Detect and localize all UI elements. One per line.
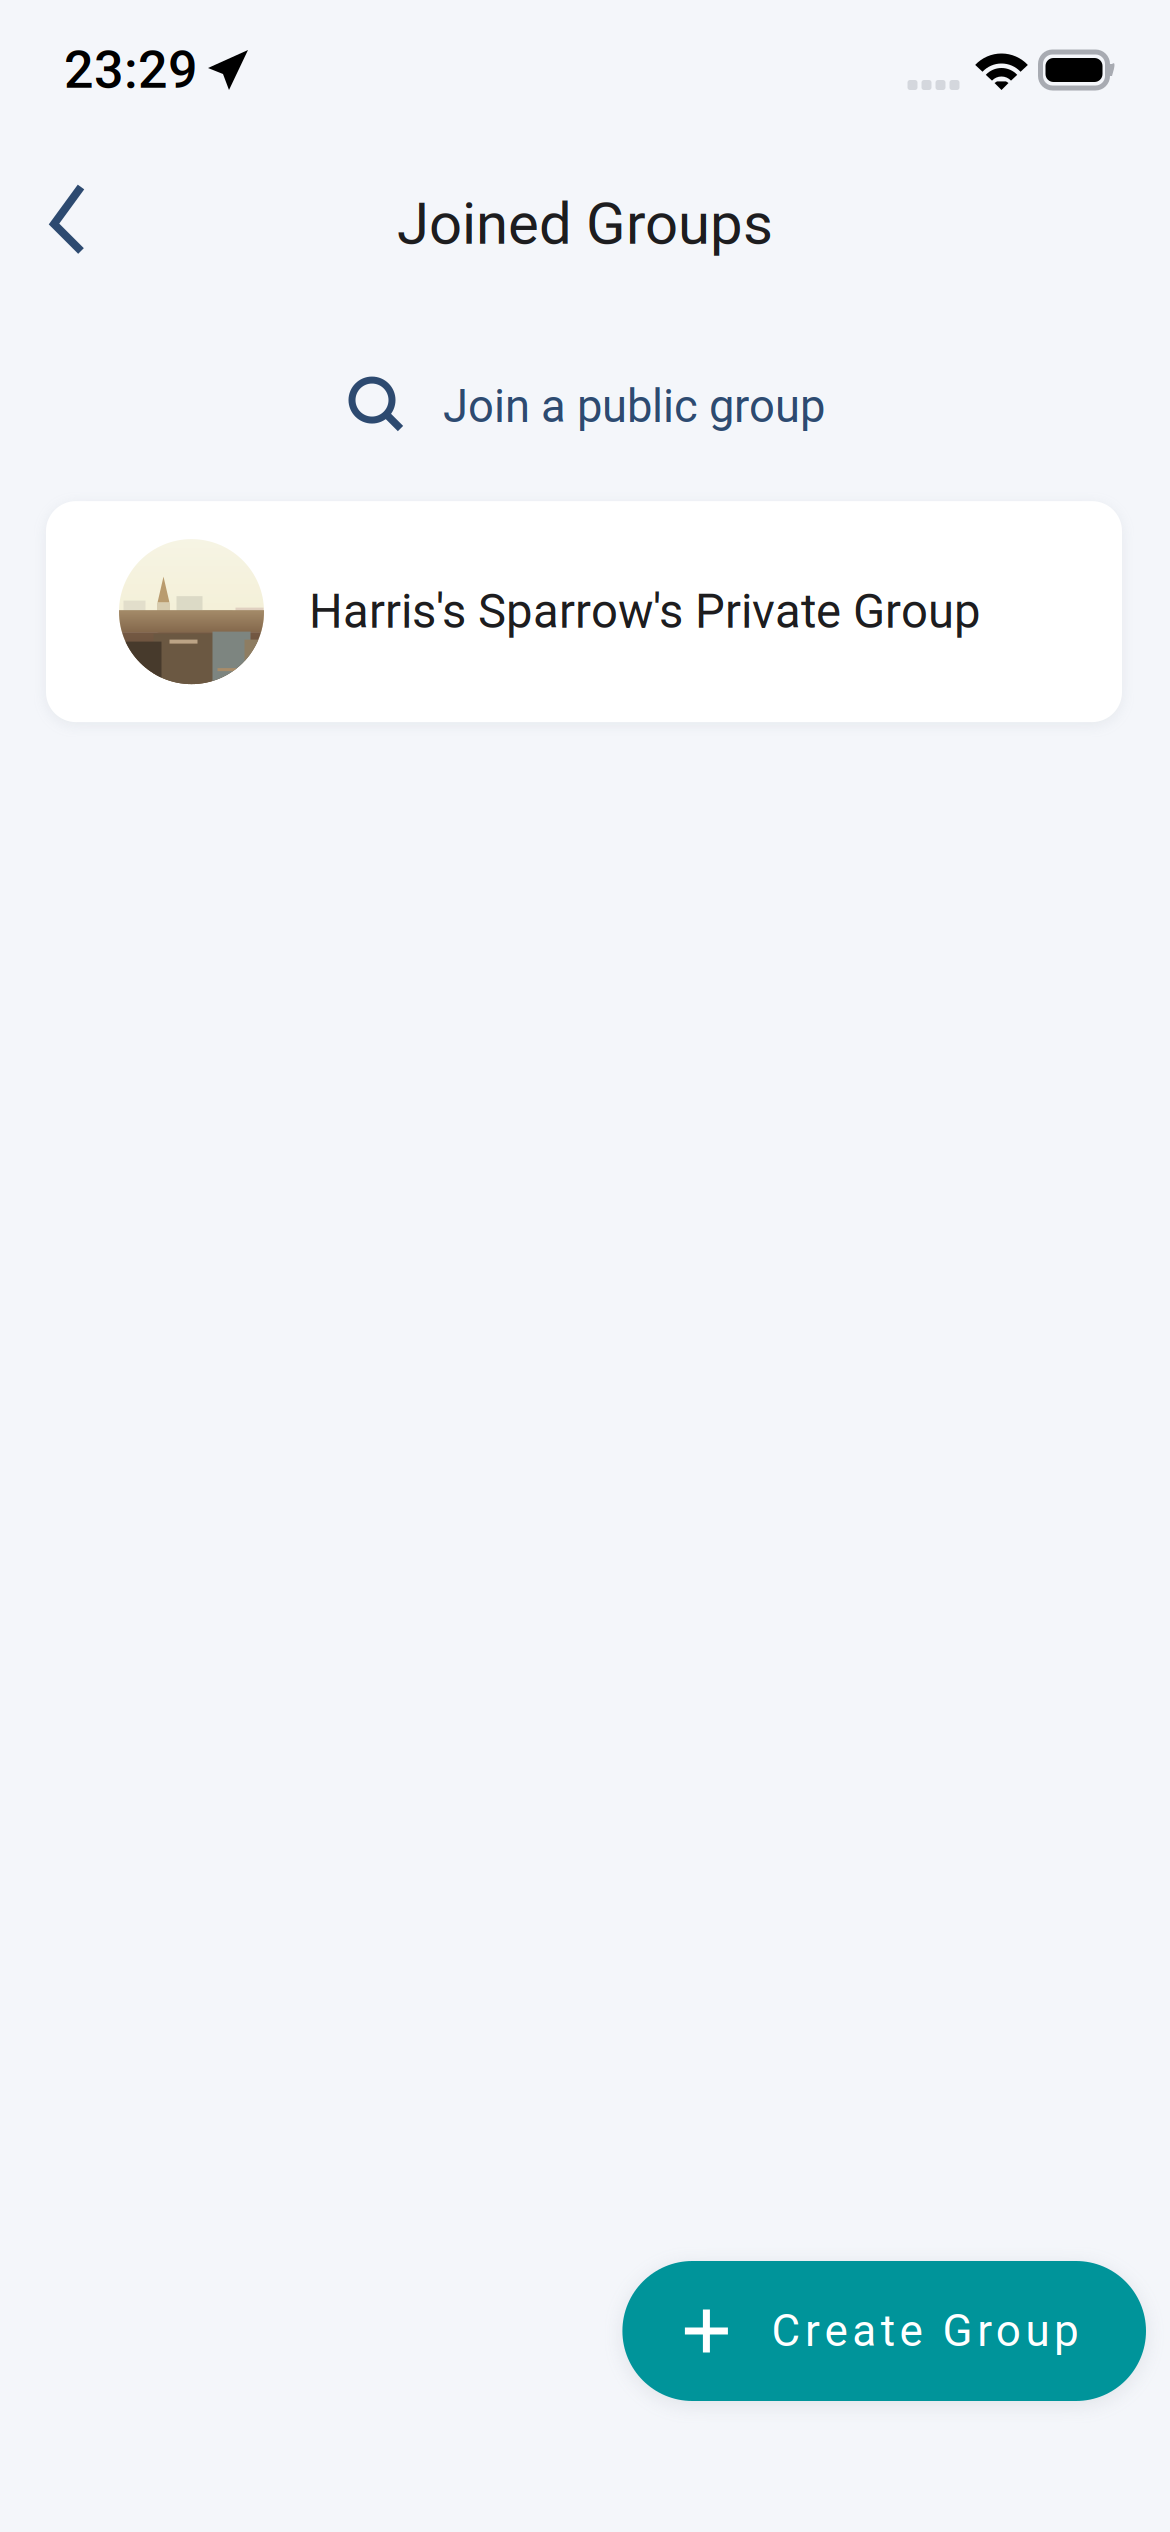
staticText: 23:29 [64, 39, 198, 100]
staticText: Joined Groups [397, 190, 773, 258]
button[interactable]: Create Group [622, 2261, 1146, 2401]
staticText: Create Group [771, 2305, 1079, 2357]
staticText: Join a public group [443, 380, 825, 433]
staticText: Harris's Sparrow's Private Group [309, 584, 981, 639]
button[interactable]: Back [0, 164, 125, 284]
button[interactable]: Join a public group [315, 358, 855, 455]
button[interactable]: Harris's Sparrow's Private Group [46, 501, 1122, 722]
